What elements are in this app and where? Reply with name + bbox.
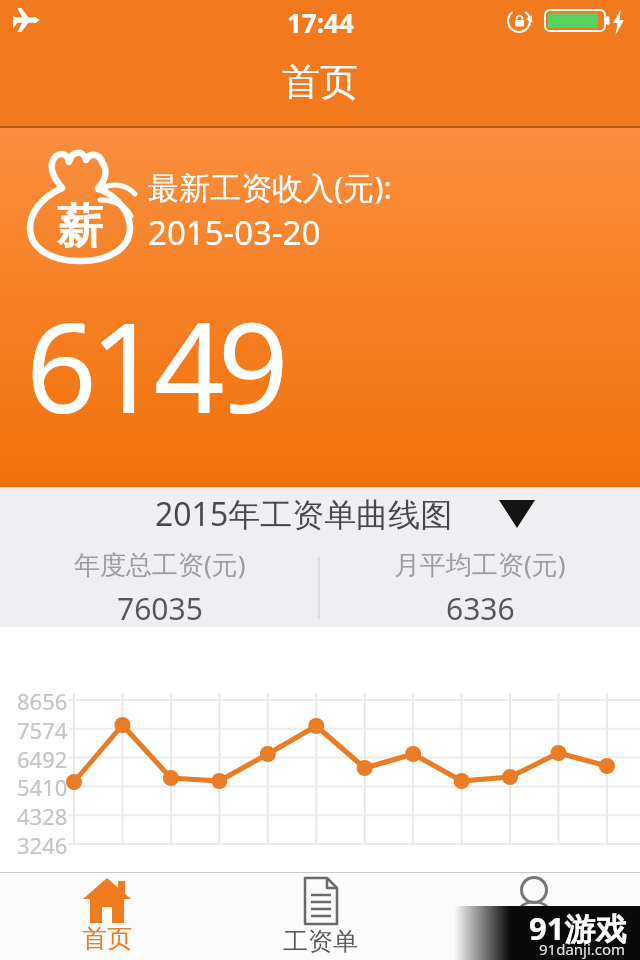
staticText: 7574	[17, 715, 68, 745]
staticText: 月平均工资(元)	[394, 546, 566, 582]
staticText: 6336	[446, 588, 515, 629]
staticText: 首页	[82, 923, 132, 954]
staticText: 最新工资收入(元):	[148, 166, 392, 208]
staticText: 8656	[17, 686, 68, 716]
staticText: 3246	[17, 830, 68, 860]
staticText: 91danji.com	[539, 939, 626, 959]
staticText: 5410	[17, 772, 68, 802]
button[interactable]: 首页	[0, 872, 214, 960]
button[interactable]: 工资单	[214, 872, 427, 960]
staticText: 工资单	[283, 926, 358, 957]
staticText: 年度总工资(元)	[74, 546, 246, 582]
staticText: 2015年工资单曲线图	[155, 492, 453, 536]
button[interactable]: 2015年工资单曲线图	[155, 492, 535, 536]
staticText: 首页	[282, 58, 358, 106]
staticText: 2015-03-20	[148, 210, 321, 255]
staticText: 17:44	[287, 5, 354, 40]
staticText: 4328	[17, 801, 68, 831]
staticText: 我的	[509, 926, 559, 957]
button[interactable]: 我的	[427, 872, 640, 960]
staticText: 76035	[117, 588, 203, 629]
staticText: 6492	[17, 744, 68, 774]
staticText: 6149	[26, 280, 282, 449]
staticText: 薪	[57, 198, 103, 256]
staticText: 91游戏	[529, 907, 627, 949]
